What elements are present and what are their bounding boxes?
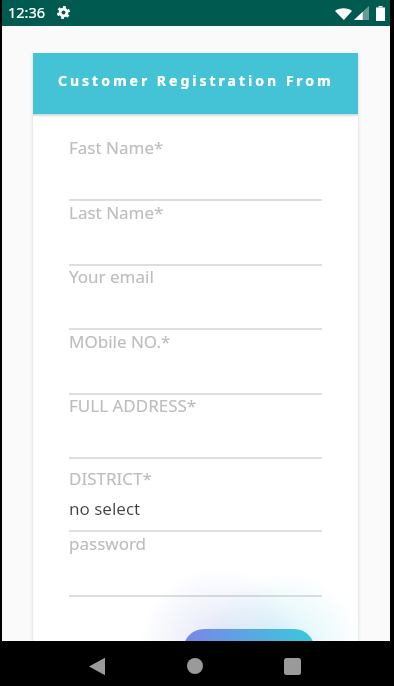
staticText: password — [69, 532, 147, 555]
staticText: FULL ADDRESS* — [69, 394, 197, 417]
staticText: SUBMIT — [221, 640, 277, 660]
staticText: Your email — [69, 265, 154, 288]
button[interactable] — [69, 136, 322, 200]
button[interactable]: Recent apps — [270, 644, 314, 686]
staticText: 12:36 — [8, 2, 46, 22]
staticText: DISTRICT* — [69, 467, 152, 490]
staticText: Fast Name* — [69, 136, 164, 159]
button[interactable] — [69, 201, 322, 265]
button[interactable] — [69, 265, 322, 329]
button[interactable] — [69, 330, 322, 394]
staticText: no select — [69, 497, 141, 520]
button[interactable]: Back — [75, 644, 119, 686]
button[interactable]: Home — [173, 644, 217, 686]
button[interactable]: SUBMIT — [183, 629, 315, 671]
staticText: Last Name* — [69, 201, 164, 224]
staticText: Customer Registration From — [58, 71, 334, 90]
button[interactable]: Customer Registration From — [33, 53, 358, 114]
staticText: MObile NO.* — [69, 330, 171, 353]
button[interactable] — [69, 467, 322, 531]
button[interactable] — [69, 532, 322, 596]
button[interactable] — [69, 394, 322, 458]
